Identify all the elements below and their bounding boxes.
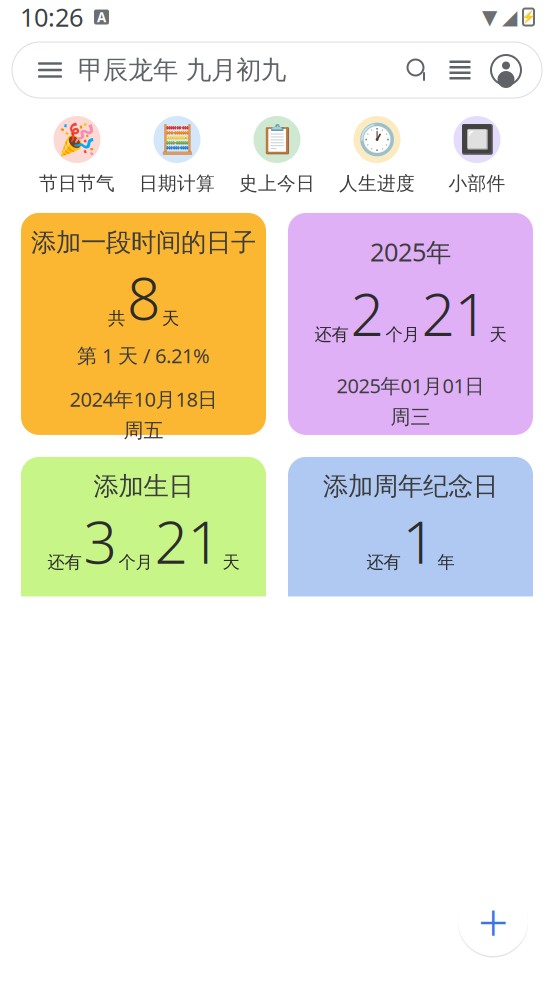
button[interactable]: 🎉 [27, 116, 127, 195]
button[interactable]: 添加一段时间的日子 [21, 213, 266, 435]
staticText: ◢ [502, 6, 517, 28]
staticText: + [478, 886, 508, 956]
staticText: 🔲 [459, 123, 494, 155]
staticText: 🧮 [159, 123, 194, 155]
staticText: 3 [83, 502, 116, 580]
button[interactable]: 🧮 [127, 116, 227, 195]
staticText: 🎉 [58, 122, 96, 157]
staticText: 8 [127, 258, 160, 336]
staticText: 2025年01月01日 [336, 372, 484, 399]
staticText: 添加一段时间的日子 [31, 227, 256, 258]
staticText: 1 [402, 502, 435, 580]
staticText: 周三 [390, 405, 430, 429]
staticText: 📋 [259, 123, 294, 155]
staticText: ⚡ [521, 10, 536, 24]
staticText: 天 [222, 552, 239, 573]
staticText: 天 [162, 308, 179, 329]
staticText: 🕐 [358, 122, 396, 157]
staticText: 个月 [385, 324, 419, 345]
staticText: 人生进度 [339, 172, 415, 195]
staticText: 还有 [314, 324, 348, 345]
staticText: 年 [437, 552, 454, 573]
button[interactable]: List view [438, 48, 482, 92]
button[interactable]: Search [398, 48, 438, 92]
staticText: 第 1 天 / 6.21% [77, 342, 210, 369]
staticText: 2 [350, 274, 383, 352]
staticText: 2025年 [370, 235, 451, 268]
button[interactable]: 添加生日 [21, 457, 266, 692]
staticText: 21 [421, 274, 487, 352]
staticText: 史上今日 [239, 172, 315, 195]
staticText: 添加生日 [93, 471, 193, 502]
button[interactable]: 🔲 [427, 116, 527, 195]
staticText: 周五 [123, 418, 163, 443]
staticText: A [97, 8, 106, 26]
staticText: 甲辰龙年 九月初九 [78, 54, 286, 85]
button[interactable]: 📋 [227, 116, 327, 195]
staticText: 10:26 [20, 0, 83, 34]
button[interactable]: 🕐 [327, 116, 427, 195]
staticText: 2024年10月18日 [69, 386, 217, 412]
staticText: 添加周年纪念日 [323, 471, 498, 502]
staticText: 日期计算 [139, 172, 215, 195]
button[interactable]: 添加周年纪念日 [288, 457, 533, 692]
button[interactable]: Account [486, 50, 526, 90]
button[interactable]: Menu [28, 48, 72, 92]
button[interactable]: Add [454, 882, 532, 960]
staticText: 还有 [366, 552, 400, 573]
staticText: 个月 [118, 552, 152, 573]
staticText: 21 [154, 502, 220, 580]
staticText: 小部件 [448, 172, 505, 195]
staticText: 天 [489, 324, 506, 345]
button[interactable]: 2025年 [288, 213, 533, 435]
staticText: 还有 [47, 552, 81, 573]
staticText: ▼ [482, 6, 497, 28]
staticText: 共 [108, 308, 125, 329]
staticText: 节日节气 [39, 172, 115, 195]
